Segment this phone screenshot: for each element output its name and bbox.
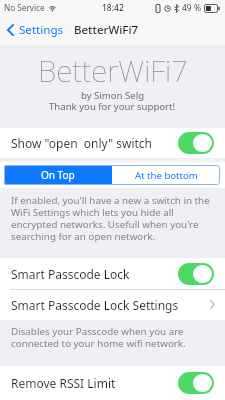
staticText: BetterWiFi7 bbox=[38, 50, 188, 90]
staticText: 18:42 bbox=[102, 2, 124, 14]
staticText: If enabled, you'll have a new a switch i… bbox=[11, 194, 213, 243]
button[interactable]: Smart Passcode Lock Settings bbox=[0, 289, 225, 320]
staticText: Disables your Passcode when you are conn… bbox=[11, 325, 213, 350]
staticText: Settings bbox=[19, 22, 64, 38]
button[interactable]: On Top bbox=[4, 165, 112, 185]
button[interactable]: Toggle bbox=[178, 263, 214, 285]
staticText: by Simon Selg bbox=[81, 89, 145, 102]
staticText: Thank you for your support! bbox=[49, 100, 176, 113]
button[interactable]: Settings bbox=[7, 15, 72, 45]
staticText: On Top bbox=[41, 168, 75, 182]
button[interactable]: Toggle bbox=[178, 132, 214, 154]
staticText: At the bottom bbox=[135, 169, 198, 182]
button[interactable]: Smart Passcode Lock bbox=[0, 258, 225, 289]
button[interactable]: Toggle bbox=[178, 372, 214, 394]
button[interactable]: Remove RSSI Limit bbox=[0, 366, 225, 400]
button[interactable]: Show "open only" switch bbox=[0, 128, 225, 158]
staticText: 49 % bbox=[182, 2, 201, 14]
button[interactable]: At the bottom bbox=[112, 165, 220, 185]
staticText: Smart Passcode Lock bbox=[11, 266, 130, 282]
staticText: No Service bbox=[4, 2, 45, 13]
staticText: Remove RSSI Limit bbox=[11, 375, 116, 391]
staticText: BetterWiFi7 bbox=[74, 22, 139, 38]
staticText: Show "open only" switch bbox=[11, 135, 152, 151]
staticText: Smart Passcode Lock Settings bbox=[11, 297, 179, 313]
